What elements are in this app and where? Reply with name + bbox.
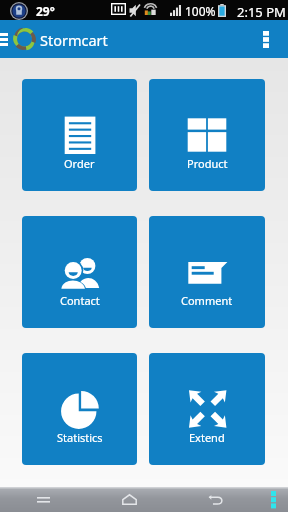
button[interactable]: Comment — [149, 216, 265, 328]
staticText: Comment — [181, 293, 233, 308]
button[interactable]: Back — [172, 487, 258, 512]
button[interactable]: More options — [252, 20, 288, 58]
staticText: 100% — [185, 3, 216, 19]
staticText: Stormcart — [40, 30, 108, 50]
button[interactable]: Statistics — [22, 353, 137, 465]
button[interactable]: Order — [22, 79, 137, 191]
staticText: Product — [187, 156, 228, 171]
button[interactable]: Contact — [22, 216, 137, 328]
button[interactable]: Product — [149, 79, 265, 191]
button[interactable]: Navigation drawer — [0, 20, 11, 58]
button[interactable]: Options — [258, 487, 288, 512]
staticText: Contact — [60, 293, 100, 308]
staticText: Statistics — [57, 430, 103, 445]
button[interactable]: Extend — [149, 353, 265, 465]
staticText: Extend — [189, 430, 225, 445]
staticText: 2:15 PM — [237, 3, 286, 21]
staticText: Order — [64, 156, 95, 171]
button[interactable]: Recent apps — [0, 487, 86, 512]
staticText: 29° — [36, 3, 55, 19]
button[interactable]: Home — [86, 487, 172, 512]
